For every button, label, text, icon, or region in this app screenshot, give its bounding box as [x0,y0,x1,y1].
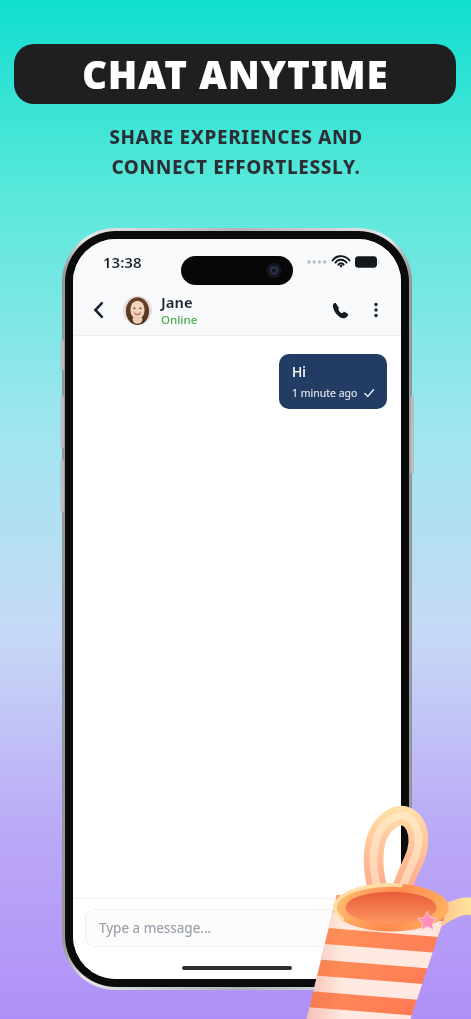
button[interactable]: More options [359,293,393,327]
staticText: Hi [292,362,306,381]
button[interactable]: Hi [279,354,387,409]
staticText: 1 minute ago [292,386,358,400]
button[interactable]: Type a message... [85,909,389,947]
staticText: 13:38 [103,252,142,272]
staticText: Type a message... [99,919,212,937]
staticText: Online [161,312,198,328]
staticText: Jane [161,292,193,312]
button[interactable]: Call [321,291,359,329]
staticText: CONNECT EFFORTLESSLY. [111,154,361,180]
button[interactable]: Back [81,292,117,328]
button[interactable]: Jane [161,292,321,328]
staticText: CHAT ANYTIME [82,48,389,100]
button[interactable]: CHAT ANYTIME [14,44,456,104]
staticText: SHARE EXPERIENCES AND [109,124,363,150]
button[interactable]: Jane profile photo [123,296,152,325]
